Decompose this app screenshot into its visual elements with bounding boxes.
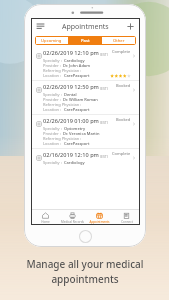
staticText: Manage all your medical bbox=[26, 257, 144, 271]
staticText: Specialty : bbox=[43, 126, 62, 131]
staticText: Appointments bbox=[62, 22, 109, 32]
staticText: Referring Physician : bbox=[43, 136, 82, 141]
staticText: Dr. Veronica Martin bbox=[63, 131, 100, 136]
staticText: Referring Physician : bbox=[43, 68, 82, 73]
button[interactable]: 02/26/2019 12:10 pm bbox=[31, 47, 140, 81]
staticText: Booked bbox=[116, 83, 131, 88]
button[interactable]: Menu bbox=[35, 21, 46, 32]
button[interactable]: Past bbox=[68, 36, 102, 45]
staticText: Connect bbox=[121, 220, 133, 224]
button[interactable]: Add appointment bbox=[125, 21, 136, 32]
staticText: Cardiology bbox=[64, 58, 85, 63]
button[interactable]: Appointments bbox=[86, 210, 113, 225]
button[interactable]: Other bbox=[102, 36, 136, 45]
staticText: 02/26/2019 12:50 pm bbox=[43, 83, 99, 91]
staticText: Specialty : bbox=[43, 160, 62, 165]
staticText: Referring Physician : bbox=[43, 102, 82, 107]
button[interactable]: Medical Records bbox=[59, 210, 86, 225]
staticText: Cardiology bbox=[64, 160, 85, 165]
button[interactable]: 02/26/2019 12:50 pm bbox=[31, 81, 140, 115]
staticText: Other bbox=[113, 38, 125, 44]
staticText: (EST) bbox=[100, 120, 108, 125]
staticText: Specialty : bbox=[43, 58, 62, 63]
staticText: Complete bbox=[112, 151, 131, 156]
staticText: (EST) bbox=[100, 52, 108, 57]
staticText: Appointments bbox=[89, 220, 110, 224]
staticText: appointments bbox=[51, 272, 119, 286]
staticText: Location : bbox=[43, 107, 62, 112]
staticText: 02/26/2019 01:00 pm bbox=[43, 117, 99, 125]
button[interactable]: Connect bbox=[113, 210, 140, 225]
staticText: Booked bbox=[116, 117, 131, 122]
staticText: Complete bbox=[112, 49, 131, 54]
button[interactable]: Home bbox=[31, 210, 59, 225]
staticText: Location : bbox=[43, 141, 62, 146]
staticText: Location : bbox=[43, 73, 62, 78]
staticText: Optometry bbox=[64, 126, 86, 131]
staticText: Upcoming bbox=[41, 38, 62, 44]
staticText: Specialty : bbox=[43, 92, 62, 97]
staticText: CarePassport bbox=[64, 107, 90, 112]
staticText: CarePassport bbox=[64, 73, 90, 78]
staticText: 02/16/2019 12:10 pm bbox=[43, 151, 99, 159]
staticText: CarePassport bbox=[64, 141, 90, 146]
button[interactable]: Upcoming bbox=[35, 36, 68, 45]
staticText: Provider : bbox=[43, 131, 61, 136]
button[interactable]: 02/16/2019 12:10 pm bbox=[31, 149, 140, 167]
staticText: Home bbox=[41, 220, 50, 224]
staticText: Provider : bbox=[43, 63, 61, 68]
staticText: Dental bbox=[64, 92, 77, 97]
staticText: 02/26/2019 12:10 pm bbox=[43, 49, 99, 57]
staticText: Past bbox=[81, 38, 90, 44]
staticText: Dr. William Roman bbox=[63, 97, 98, 102]
staticText: Medical Records bbox=[61, 220, 84, 224]
staticText: Provider : bbox=[43, 97, 61, 102]
button[interactable]: 02/26/2019 01:00 pm bbox=[31, 115, 140, 149]
staticText: (EST) bbox=[100, 86, 108, 91]
staticText: Dr. John Adam bbox=[63, 63, 90, 68]
staticText: (EST) bbox=[100, 154, 108, 159]
